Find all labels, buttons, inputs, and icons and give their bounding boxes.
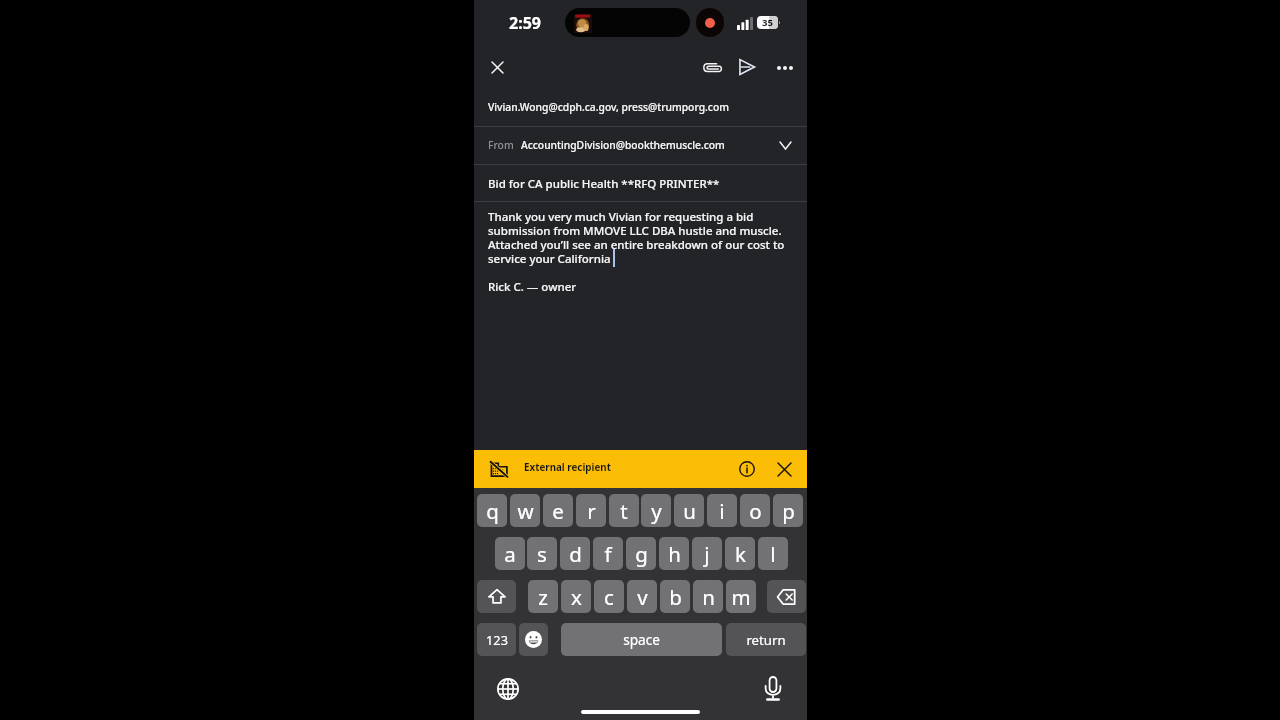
staticText: w: [517, 497, 534, 525]
staticText: d: [569, 540, 582, 568]
staticText: Vivian.Wong@cdph.ca.gov, press@trumporg.…: [488, 100, 729, 114]
button[interactable]: w: [510, 494, 540, 527]
button[interactable]: Close: [482, 52, 512, 82]
button[interactable]: r: [576, 494, 606, 527]
staticText: y: [651, 497, 662, 525]
button[interactable]: s: [527, 537, 557, 570]
staticText: i: [719, 497, 725, 525]
staticText: j: [704, 540, 710, 568]
staticText: m: [731, 583, 751, 611]
staticText: return: [746, 631, 786, 649]
button[interactable]: u: [674, 494, 704, 527]
button[interactable]: k: [725, 537, 755, 570]
staticText: 2:59: [509, 12, 541, 34]
staticText: r: [587, 497, 596, 525]
button[interactable]: h: [659, 537, 689, 570]
button[interactable]: Info: [735, 457, 759, 481]
button[interactable]: n: [693, 580, 723, 613]
button[interactable]: Dismiss: [772, 457, 796, 481]
staticText: From: [488, 138, 514, 152]
staticText: v: [637, 583, 648, 611]
button[interactable]: Dictate: [759, 674, 787, 702]
button[interactable]: o: [740, 494, 770, 527]
button[interactable]: i: [707, 494, 737, 527]
button[interactable]: Emoji: [519, 623, 548, 656]
button[interactable]: b: [660, 580, 690, 613]
staticText: Thank you very much Vivian for requestin…: [488, 209, 790, 295]
staticText: q: [486, 497, 499, 525]
staticText: f: [604, 540, 612, 568]
button[interactable]: Change keyboard: [494, 675, 522, 703]
button[interactable]: Backspace: [767, 580, 806, 613]
button[interactable]: return: [726, 623, 806, 656]
button[interactable]: Attach file: [697, 53, 725, 81]
staticText: n: [702, 583, 715, 611]
button[interactable]: Expand: [772, 132, 798, 158]
staticText: k: [735, 540, 746, 568]
staticText: t: [620, 497, 628, 525]
button[interactable]: space: [561, 623, 722, 656]
button[interactable]: Send: [733, 53, 761, 81]
button[interactable]: l: [758, 537, 788, 570]
staticText: c: [604, 583, 614, 611]
staticText: x: [571, 583, 582, 611]
staticText: space: [623, 630, 660, 649]
button[interactable]: t: [609, 494, 639, 527]
button[interactable]: a: [495, 537, 525, 570]
button[interactable]: g: [626, 537, 656, 570]
button[interactable]: z: [528, 580, 558, 613]
staticText: s: [537, 540, 547, 568]
button[interactable]: From: [474, 127, 807, 164]
button[interactable]: External recipient: [474, 450, 807, 488]
staticText: Bid for CA public Health **RFQ PRINTER**: [488, 176, 720, 192]
button[interactable]: Vivian.Wong@cdph.ca.gov, press@trumporg.…: [474, 90, 807, 126]
button[interactable]: Shift: [477, 580, 516, 613]
staticText: h: [668, 540, 681, 568]
staticText: 123: [486, 631, 508, 648]
button[interactable]: f: [593, 537, 623, 570]
button[interactable]: v: [627, 580, 657, 613]
staticText: g: [635, 540, 648, 568]
staticText: u: [683, 497, 696, 525]
button[interactable]: 123: [477, 623, 516, 656]
button[interactable]: y: [641, 494, 671, 527]
staticText: 35: [762, 16, 773, 29]
staticText: External recipient: [524, 461, 611, 474]
staticText: AccountingDivision@bookthemuscle.com: [521, 138, 725, 152]
button[interactable]: e: [543, 494, 573, 527]
button[interactable]: Thank you very much Vivian for requestin…: [474, 202, 807, 450]
staticText: p: [782, 497, 795, 525]
staticText: e: [552, 497, 564, 525]
staticText: l: [770, 540, 776, 568]
button[interactable]: q: [477, 494, 507, 527]
button[interactable]: c: [594, 580, 624, 613]
staticText: a: [504, 540, 516, 568]
button[interactable]: d: [560, 537, 590, 570]
staticText: z: [538, 583, 548, 611]
button[interactable]: j: [692, 537, 722, 570]
button[interactable]: Bid for CA public Health **RFQ PRINTER**: [474, 165, 807, 201]
button[interactable]: x: [561, 580, 591, 613]
button[interactable]: More options: [771, 54, 799, 82]
button[interactable]: p: [773, 494, 803, 527]
staticText: o: [749, 497, 762, 525]
staticText: b: [669, 583, 682, 611]
button[interactable]: m: [726, 580, 756, 613]
